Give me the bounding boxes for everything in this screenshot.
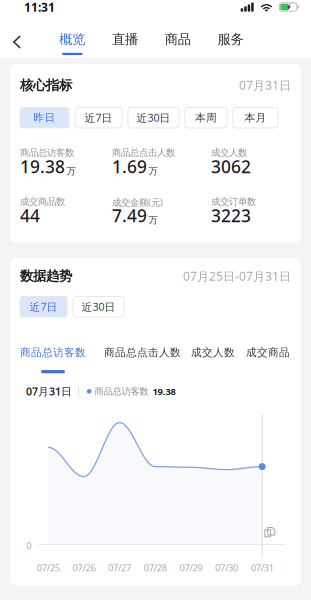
button[interactable]: 返回 [6, 26, 28, 58]
button[interactable]: 商品总点击人数 [86, 346, 181, 359]
staticText: 近30日 [136, 111, 170, 125]
button[interactable]: 服务 [204, 26, 257, 58]
staticText: 07月31日 [26, 384, 72, 398]
staticText: 07/28 [144, 561, 167, 574]
staticText: 万 [66, 165, 75, 177]
button[interactable]: 成交人数 [181, 346, 235, 359]
button[interactable]: 商品总访客数 [20, 346, 86, 373]
staticText: 昨日 [33, 111, 55, 124]
staticText: 07月31日 [239, 77, 291, 93]
staticText: 商品总访客数 [94, 386, 148, 397]
staticText: 成交商品 [246, 346, 290, 359]
staticText: 商品 [165, 31, 191, 48]
button[interactable]: 商品 [151, 26, 204, 58]
staticText: 服务 [217, 31, 243, 48]
staticText: 概览 [59, 31, 85, 48]
button[interactable]: 本月 [233, 107, 278, 128]
staticText: 07/31 [251, 561, 274, 574]
staticText: 07/27 [108, 561, 131, 574]
staticText: 07/30 [215, 561, 238, 574]
button[interactable]: 概览 [46, 26, 99, 58]
staticText: 07/29 [179, 561, 202, 574]
staticText: 11:31 [24, 0, 55, 15]
staticText: 万 [148, 214, 157, 226]
staticText: 核心指标 [20, 77, 72, 93]
staticText: 近7日 [84, 111, 112, 125]
staticText: 商品总点击人数 [112, 147, 175, 158]
staticText: 成交商品数 [20, 196, 65, 207]
staticText: 3223 [211, 204, 251, 227]
button[interactable]: 近7日 [75, 107, 122, 128]
staticText: 本月 [244, 111, 266, 124]
staticText: 本周 [195, 111, 217, 124]
staticText: 商品总访客数 [20, 147, 74, 158]
staticText: 07月25日-07月31日 [183, 268, 291, 284]
staticText: 万 [148, 165, 157, 177]
button[interactable]: 昨日 [20, 107, 69, 128]
button[interactable]: 近30日 [128, 107, 179, 128]
button[interactable]: 直播 [99, 26, 151, 58]
staticText: 直播 [112, 31, 138, 48]
button[interactable]: 近30日 [73, 296, 124, 317]
staticText: 0 [26, 539, 31, 552]
staticText: 商品总点击人数 [104, 346, 181, 359]
button[interactable]: 本周 [185, 107, 227, 128]
staticText: 成交金额(元) [112, 196, 163, 208]
staticText: 7.49 [112, 204, 147, 227]
staticText: 近7日 [29, 300, 57, 314]
staticText: 近30日 [81, 300, 115, 314]
staticText: 44 [20, 204, 40, 227]
staticText: 07/26 [72, 561, 95, 574]
staticText: 商品总访客数 [20, 346, 86, 359]
button[interactable]: 近7日 [20, 296, 67, 317]
staticText: 19.38 [152, 385, 175, 397]
staticText: 1.69 [112, 155, 147, 178]
staticText: 成交订单数 [211, 196, 256, 207]
button[interactable]: 成交商品 [235, 346, 290, 359]
staticText: 07/25 [37, 561, 60, 574]
staticText: 3062 [211, 155, 251, 178]
staticText: 成交人数 [191, 346, 235, 359]
staticText: 成交人数 [211, 147, 247, 158]
staticText: 19.38 [20, 155, 65, 178]
staticText: 数据趋势 [20, 268, 72, 284]
